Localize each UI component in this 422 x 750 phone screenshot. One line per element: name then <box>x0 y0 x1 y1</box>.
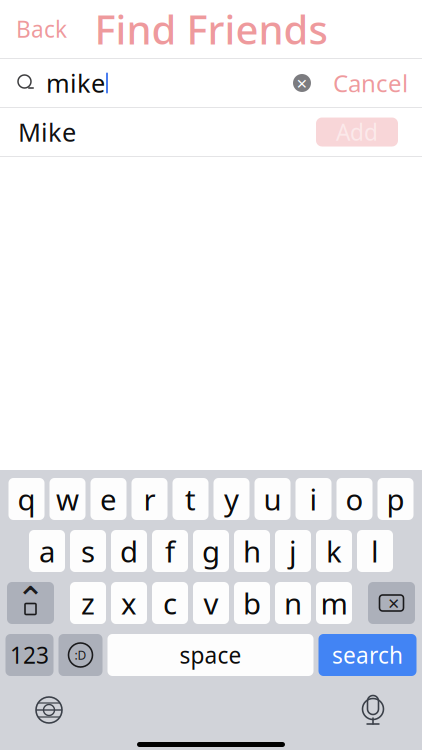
button[interactable]: space <box>107 634 313 676</box>
staticText: v <box>203 583 218 622</box>
button[interactable]: 123 <box>5 634 53 676</box>
button[interactable]: y <box>213 478 249 520</box>
button[interactable]: t <box>172 478 208 520</box>
staticText: 123 <box>10 640 49 670</box>
staticText: Back <box>16 14 67 44</box>
staticText: a <box>39 531 55 570</box>
button[interactable]: f <box>152 530 188 572</box>
staticText: r <box>143 479 155 518</box>
button[interactable]: s <box>70 530 106 572</box>
staticText: j <box>289 531 297 570</box>
staticText: y <box>224 479 239 518</box>
staticText: Cancel <box>333 67 408 99</box>
staticText: s <box>81 531 95 570</box>
staticText: f <box>165 531 175 570</box>
button[interactable]: Cancel <box>319 59 422 107</box>
staticText: m <box>320 583 347 622</box>
staticText: mike <box>46 66 105 100</box>
staticText: space <box>179 640 241 670</box>
staticText: e <box>100 479 117 518</box>
button[interactable]: v <box>193 582 229 624</box>
staticText: t <box>185 479 196 518</box>
button[interactable]: m <box>316 582 352 624</box>
button[interactable]: Clear text <box>285 63 319 103</box>
button[interactable]: r <box>131 478 167 520</box>
button[interactable]: i <box>295 478 331 520</box>
button[interactable]: Delete <box>368 582 415 624</box>
button[interactable]: o <box>336 478 372 520</box>
staticText: p <box>386 479 404 518</box>
button[interactable]: Emoji <box>58 634 102 676</box>
button[interactable]: Next keyboard <box>16 687 82 733</box>
staticText: g <box>202 531 220 570</box>
button[interactable]: k <box>316 530 352 572</box>
button[interactable]: w <box>49 478 85 520</box>
button[interactable]: b <box>234 582 270 624</box>
staticText: × <box>388 590 399 616</box>
staticText: d <box>120 531 138 570</box>
staticText: n <box>284 583 302 622</box>
staticText: k <box>326 531 342 570</box>
button[interactable]: Dictation <box>340 686 406 734</box>
button[interactable]: d <box>111 530 147 572</box>
button[interactable]: c <box>152 582 188 624</box>
staticText: w <box>56 479 79 518</box>
staticText: q <box>17 479 35 518</box>
staticText: x <box>121 583 137 622</box>
button[interactable]: z <box>70 582 106 624</box>
button[interactable]: Back <box>0 6 83 52</box>
staticText: l <box>371 531 379 570</box>
staticText: h <box>243 531 261 570</box>
staticText: search <box>332 640 403 670</box>
staticText: ⌃ <box>16 579 45 619</box>
staticText: :D <box>74 647 86 663</box>
button[interactable]: Add <box>316 117 398 146</box>
button[interactable]: search <box>318 634 416 676</box>
button[interactable]: p <box>377 478 413 520</box>
staticText: c <box>163 583 177 622</box>
staticText: Add <box>336 117 378 147</box>
staticText: i <box>309 479 317 518</box>
staticText: Mike <box>18 115 76 149</box>
button[interactable]: a <box>29 530 65 572</box>
staticText: × <box>296 71 307 95</box>
staticText: u <box>263 479 281 518</box>
button[interactable]: u <box>254 478 290 520</box>
button[interactable]: n <box>275 582 311 624</box>
staticText: Find Friends <box>94 2 327 55</box>
button[interactable]: l <box>357 530 393 572</box>
staticText: b <box>243 583 261 622</box>
button[interactable]: e <box>90 478 126 520</box>
button[interactable]: Shift <box>7 582 54 624</box>
button[interactable]: g <box>193 530 229 572</box>
staticText: o <box>345 479 363 518</box>
button[interactable]: h <box>234 530 270 572</box>
button[interactable]: q <box>8 478 44 520</box>
button[interactable]: j <box>275 530 311 572</box>
staticText: z <box>81 583 95 622</box>
button[interactable]: x <box>111 582 147 624</box>
